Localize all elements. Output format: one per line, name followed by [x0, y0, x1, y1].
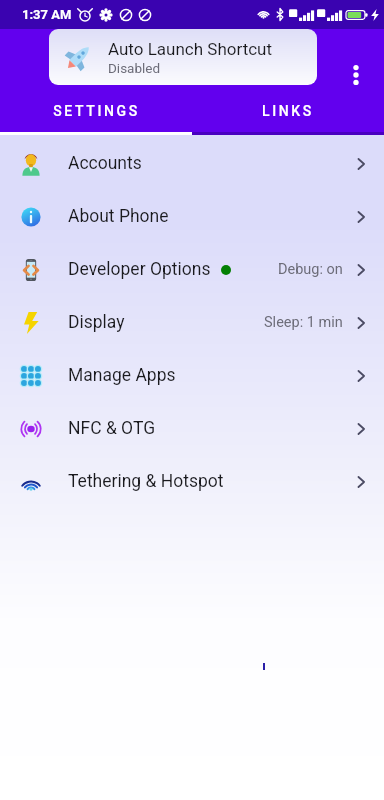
staticText: Developer Options — [68, 259, 211, 280]
button[interactable]: Tethering & Hotspot — [0, 455, 384, 508]
staticText: 1:37 AM — [22, 7, 72, 22]
staticText: SETTINGS — [53, 103, 140, 119]
staticText: Accounts — [68, 153, 142, 174]
staticText: Sleep: 1 min — [264, 314, 343, 331]
button[interactable]: Developer Options — [0, 243, 384, 296]
staticText: About Phone — [68, 206, 169, 227]
button[interactable]: LINKS — [192, 93, 384, 129]
staticText: Debug: on — [278, 261, 343, 278]
button[interactable]: More options — [340, 58, 372, 92]
button[interactable]: SETTINGS — [0, 93, 192, 129]
staticText: NFC & OTG — [68, 418, 156, 439]
button[interactable]: About Phone — [0, 190, 384, 243]
staticText: LINKS — [262, 103, 314, 119]
staticText: Auto Launch Shortcut — [108, 39, 273, 59]
staticText: Tethering & Hotspot — [68, 471, 224, 492]
staticText: Disabled — [108, 60, 161, 76]
button[interactable]: Manage Apps — [0, 349, 384, 402]
button[interactable]: Display — [0, 296, 384, 349]
button[interactable]: Auto Launch Shortcut — [49, 29, 317, 85]
button[interactable]: Accounts — [0, 137, 384, 190]
staticText: Display — [68, 312, 125, 333]
staticText: Manage Apps — [68, 365, 176, 386]
button[interactable]: NFC & OTG — [0, 402, 384, 455]
